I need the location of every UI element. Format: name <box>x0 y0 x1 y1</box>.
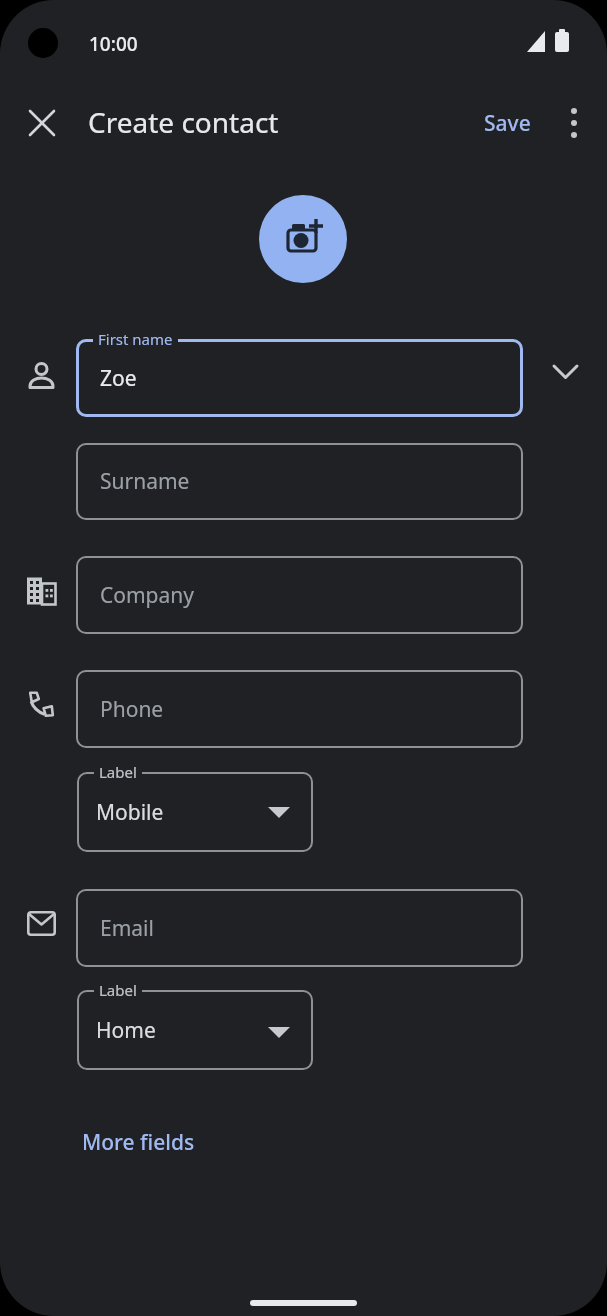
button[interactable] <box>259 195 347 283</box>
button[interactable]: Email <box>76 889 523 967</box>
button[interactable]: Surname <box>76 443 523 520</box>
staticText: More fields <box>82 1128 195 1157</box>
staticText: Company <box>100 581 194 610</box>
staticText: Label <box>99 980 137 1000</box>
staticText: First name <box>98 329 173 349</box>
staticText: Save <box>484 109 531 138</box>
staticText: Surname <box>100 467 190 496</box>
button[interactable] <box>22 103 62 143</box>
staticText: Create contact <box>88 103 279 141</box>
button[interactable]: Mobile <box>77 772 313 852</box>
button[interactable]: More fields <box>82 1128 195 1157</box>
button[interactable] <box>544 352 586 394</box>
staticText: Email <box>100 914 154 943</box>
staticText: Zoe <box>100 364 137 393</box>
button[interactable]: Save <box>470 103 544 143</box>
staticText: Label <box>99 762 137 782</box>
staticText: Phone <box>100 695 164 724</box>
button[interactable]: Company <box>76 556 523 634</box>
button[interactable] <box>556 103 592 143</box>
staticText: 10:00 <box>89 31 138 57</box>
button[interactable]: Phone <box>76 670 523 748</box>
button[interactable]: Zoe <box>76 339 523 417</box>
button[interactable]: Home <box>77 990 313 1070</box>
staticText: Home <box>96 1016 156 1045</box>
staticText: Mobile <box>96 798 164 827</box>
